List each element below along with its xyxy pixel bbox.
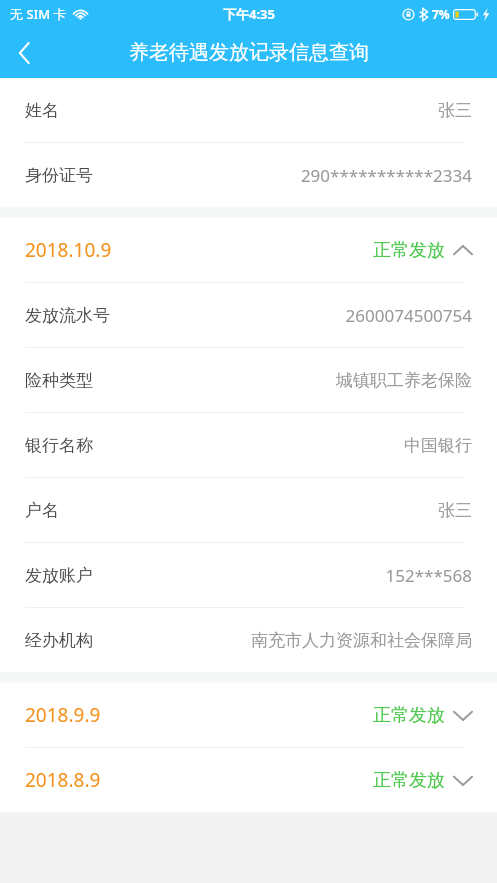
staticText: 290***********2334 <box>300 164 472 187</box>
button[interactable]: 发放账户 <box>0 543 497 608</box>
button[interactable]: 身份证号 <box>0 143 497 207</box>
staticText: 正常发放 <box>373 704 445 727</box>
staticText: 7% <box>432 6 450 22</box>
button[interactable]: 险种类型 <box>0 348 497 413</box>
button[interactable]: 2018.10.9 <box>0 218 497 283</box>
staticText: 正常发放 <box>373 239 445 262</box>
staticText: 中国银行 <box>404 435 472 456</box>
staticText: 发放账户 <box>25 565 93 586</box>
other: Collapse <box>454 245 472 256</box>
staticText: 152***568 <box>385 564 472 587</box>
staticText: 2600074500754 <box>345 304 472 327</box>
button[interactable]: 2018.9.9 <box>0 683 497 748</box>
button[interactable]: Back <box>0 29 48 77</box>
staticText: 张三 <box>438 100 472 121</box>
staticText: 险种类型 <box>25 370 93 391</box>
staticText: 2018.10.9 <box>25 237 112 263</box>
button[interactable]: 银行名称 <box>0 413 497 478</box>
staticText: 经办机构 <box>25 630 93 651</box>
staticText: 南充市人力资源和社会保障局 <box>251 630 472 651</box>
staticText: 正常发放 <box>373 769 445 792</box>
staticText: 下午4:35 <box>223 5 275 23</box>
staticText: 养老待遇发放记录信息查询 <box>129 40 369 65</box>
staticText: 张三 <box>438 500 472 521</box>
button[interactable]: 2018.8.9 <box>0 748 497 812</box>
other: Expand <box>454 710 472 721</box>
staticText: 户名 <box>25 500 59 521</box>
button[interactable]: 户名 <box>0 478 497 543</box>
staticText: 2018.9.9 <box>25 702 101 728</box>
button[interactable]: 发放流水号 <box>0 283 497 348</box>
staticText: 城镇职工养老保险 <box>336 370 472 391</box>
other: Expand <box>454 775 472 786</box>
button[interactable]: 经办机构 <box>0 608 497 672</box>
staticText: 银行名称 <box>25 435 93 456</box>
staticText: 无 SIM 卡 <box>10 5 67 23</box>
staticText: 2018.8.9 <box>25 767 101 793</box>
button[interactable]: 姓名 <box>0 78 497 143</box>
staticText: 身份证号 <box>25 165 93 186</box>
staticText: 发放流水号 <box>25 305 110 326</box>
staticText: 姓名 <box>25 100 59 121</box>
